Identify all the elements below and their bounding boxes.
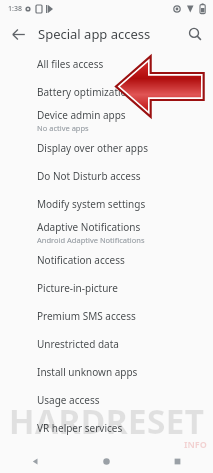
button[interactable]: Search (181, 20, 209, 48)
staticText: INFO (184, 438, 207, 450)
staticText: All files access (37, 57, 104, 71)
button[interactable]: Picture-in-picture (0, 274, 213, 302)
button[interactable]: Recent apps (142, 450, 213, 473)
staticText: Special app access (38, 25, 151, 43)
staticText: Picture-in-picture (37, 281, 118, 295)
button[interactable]: All files access (0, 50, 213, 78)
staticText: Usage access (37, 393, 100, 407)
staticText: VR helper services (37, 421, 123, 435)
button[interactable]: VR helper services (0, 414, 213, 442)
staticText: Android Adaptive Notifications (37, 235, 145, 245)
button[interactable]: Navigate up (4, 20, 32, 48)
button[interactable]: Unrestricted data (0, 330, 213, 358)
staticText: Unrestricted data (37, 337, 119, 351)
button[interactable]: Device admin apps (0, 106, 213, 134)
staticText: Premium SMS access (37, 309, 136, 323)
button[interactable]: Modify system settings (0, 190, 213, 218)
staticText: Device admin apps (37, 108, 126, 122)
staticText: Adaptive Notifications (37, 220, 141, 234)
button[interactable]: Display over other apps (0, 134, 213, 162)
staticText: Battery optimization (37, 85, 133, 99)
button[interactable]: Usage access (0, 386, 213, 414)
button[interactable]: Battery optimization (0, 78, 213, 106)
button[interactable]: Premium SMS access (0, 302, 213, 330)
button[interactable]: Home (71, 450, 142, 473)
button[interactable]: Do Not Disturb access (0, 162, 213, 190)
staticText: Do Not Disturb access (37, 169, 141, 183)
staticText: No active apps (37, 123, 89, 133)
button[interactable]: Install unknown apps (0, 358, 213, 386)
staticText: Install unknown apps (37, 365, 138, 379)
staticText: Notification access (37, 253, 125, 267)
button[interactable]: Back (0, 450, 71, 473)
staticText: HARDRESET (0, 398, 213, 444)
staticText: Modify system settings (37, 197, 146, 211)
button[interactable]: Adaptive Notifications (0, 218, 213, 246)
staticText: Display over other apps (37, 141, 148, 155)
staticText: 1:38 (8, 4, 22, 14)
button[interactable]: Notification access (0, 246, 213, 274)
